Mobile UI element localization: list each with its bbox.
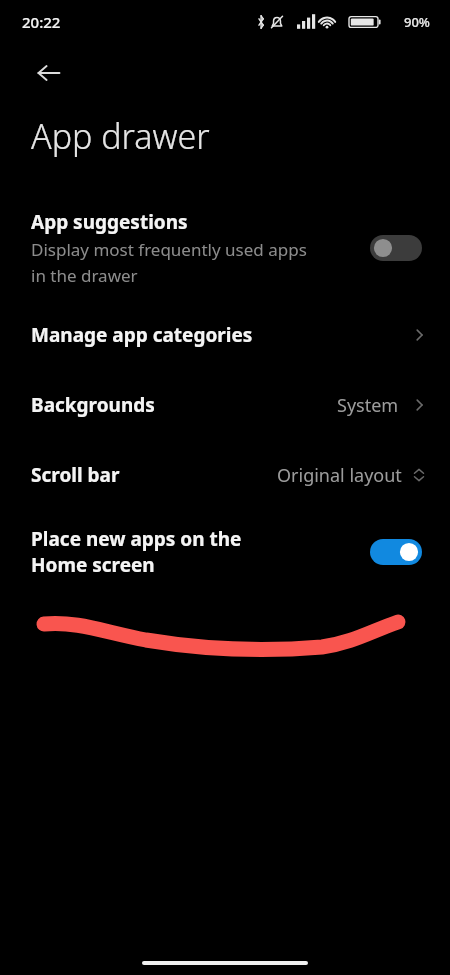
button[interactable]: Scroll bar: [0, 440, 450, 510]
staticText: App suggestions: [31, 209, 188, 235]
button[interactable]: Manage app categories: [0, 300, 450, 370]
staticText: Scroll bar: [31, 462, 120, 488]
staticText: Display most frequently used apps in the…: [31, 238, 307, 287]
staticText: Backgrounds: [31, 392, 155, 418]
button[interactable]: Toggle off: [370, 235, 422, 261]
button[interactable]: Place new apps on the Home screen: [0, 510, 450, 594]
staticText: Place new apps on the Home screen: [31, 526, 242, 578]
button[interactable]: App suggestions: [0, 196, 450, 300]
staticText: 90%: [404, 13, 430, 31]
staticText: System: [337, 393, 399, 418]
button[interactable]: Backgrounds: [0, 370, 450, 440]
button[interactable]: Toggle on: [370, 539, 422, 565]
staticText: Manage app categories: [31, 322, 253, 348]
staticText: 20:22: [22, 12, 61, 32]
staticText: App drawer: [31, 113, 210, 159]
button[interactable]: Back: [26, 50, 72, 96]
staticText: Original layout: [277, 463, 402, 488]
